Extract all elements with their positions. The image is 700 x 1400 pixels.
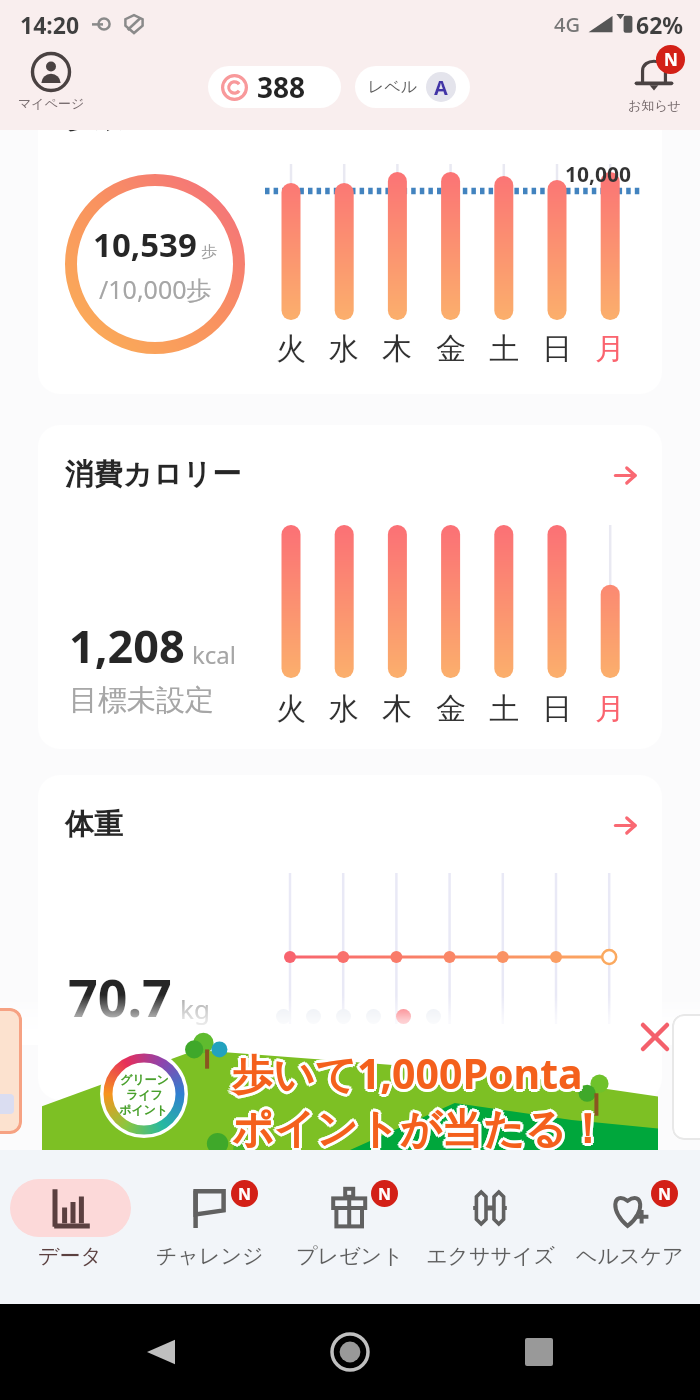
staticText: ヘルスケア bbox=[576, 1243, 684, 1269]
staticText: 水 bbox=[329, 330, 359, 368]
staticText: 歩いて1,000Ponta bbox=[232, 1042, 583, 1098]
staticText: チャレンジ bbox=[156, 1243, 264, 1269]
staticText: ポイントが当たる！ bbox=[234, 1106, 610, 1154]
staticText: ポイントが当たる！ bbox=[230, 1102, 606, 1150]
staticText: 日 bbox=[542, 690, 572, 728]
staticText: 日 bbox=[542, 330, 572, 368]
staticText: 歩いて1,000Ponta bbox=[230, 1047, 581, 1103]
staticText: 消費カロリー bbox=[65, 456, 242, 493]
staticText: ライフ bbox=[126, 1087, 163, 1102]
staticText: 歩 bbox=[201, 242, 217, 262]
button[interactable]: 歩数 bbox=[38, 78, 662, 394]
button[interactable]: 388 bbox=[208, 66, 341, 108]
button[interactable]: 消費カロリー bbox=[38, 425, 662, 749]
staticText: N bbox=[658, 1183, 672, 1205]
staticText: 歩いて1,000Ponta bbox=[232, 1048, 583, 1104]
staticText: プレゼント bbox=[296, 1243, 404, 1269]
staticText: 歩数 bbox=[66, 100, 122, 135]
staticText: ポイントが当たる！ bbox=[235, 1104, 611, 1152]
button[interactable]: データ bbox=[0, 1150, 140, 1304]
staticText: 火 bbox=[276, 690, 306, 728]
staticText: ポイントが当たる！ bbox=[229, 1104, 605, 1152]
staticText: N bbox=[238, 1183, 252, 1205]
staticText: 388 bbox=[257, 68, 306, 106]
button[interactable]: 広告を閉じる bbox=[635, 1017, 675, 1057]
button[interactable]: ホーム bbox=[322, 1324, 378, 1380]
staticText: ポイントが当たる！ bbox=[230, 1106, 606, 1154]
staticText: kcal bbox=[192, 638, 236, 671]
staticText: kg bbox=[180, 991, 210, 1026]
button[interactable]: エクササイズ bbox=[420, 1150, 560, 1304]
staticText: N bbox=[378, 1183, 392, 1205]
staticText: 土 bbox=[489, 690, 519, 728]
staticText: N bbox=[664, 48, 678, 71]
staticText: 月 bbox=[595, 690, 625, 728]
button[interactable]: レベル bbox=[355, 66, 470, 108]
staticText: 木 bbox=[382, 330, 412, 368]
staticText: 木 bbox=[382, 690, 412, 728]
staticText: 1,208 bbox=[69, 615, 185, 676]
button[interactable]: N bbox=[560, 1150, 700, 1304]
button[interactable]: 詳細を見る bbox=[607, 807, 643, 843]
staticText: データ bbox=[38, 1243, 102, 1269]
staticText: 金 bbox=[436, 690, 466, 728]
staticText: 金 bbox=[436, 330, 466, 368]
button[interactable]: 体重 bbox=[38, 775, 662, 1100]
button[interactable]: お知らせ bbox=[609, 51, 699, 113]
staticText: 体重 bbox=[65, 806, 123, 843]
staticText: /10,000歩 bbox=[99, 272, 212, 306]
button[interactable]: 詳細を見る bbox=[607, 457, 643, 493]
staticText: 4G bbox=[554, 11, 580, 38]
staticText: 62% bbox=[636, 9, 684, 40]
staticText: A bbox=[434, 74, 448, 101]
staticText: 火 bbox=[276, 330, 306, 368]
staticText: 10,539 bbox=[93, 222, 197, 267]
staticText: 14:20 bbox=[20, 9, 80, 40]
staticText: ポイントが当たる！ bbox=[232, 1107, 608, 1155]
button[interactable]: グリーン bbox=[42, 1043, 658, 1150]
staticText: エクササイズ bbox=[426, 1243, 555, 1269]
staticText: 水 bbox=[329, 690, 359, 728]
staticText: ポイントが当たる！ bbox=[234, 1102, 610, 1150]
button[interactable]: N bbox=[280, 1150, 420, 1304]
staticText: 目標未設定 bbox=[69, 682, 214, 719]
button[interactable]: 履歴 bbox=[511, 1324, 567, 1380]
staticText: 10,000 bbox=[565, 160, 632, 189]
button[interactable]: マイページ bbox=[6, 51, 96, 111]
staticText: ポイントが当たる！ bbox=[232, 1101, 608, 1149]
button[interactable]: N bbox=[140, 1150, 280, 1304]
staticText: 歩いて1,000Ponta bbox=[234, 1047, 585, 1103]
staticText: マイページ bbox=[18, 95, 85, 111]
staticText: グリーン bbox=[120, 1072, 169, 1087]
staticText: ポイントが当たる！ bbox=[232, 1104, 608, 1152]
staticText: 歩いて1,000Ponta bbox=[232, 1045, 583, 1101]
staticText: レベル bbox=[368, 77, 418, 97]
staticText: ポイント bbox=[119, 1102, 169, 1117]
button[interactable]: 戻る bbox=[133, 1324, 189, 1380]
staticText: 歩いて1,000Ponta bbox=[235, 1045, 586, 1101]
staticText: 70.7 bbox=[68, 961, 172, 1032]
staticText: 月 bbox=[595, 330, 625, 368]
staticText: 歩いて1,000Ponta bbox=[230, 1043, 581, 1099]
staticText: 歩いて1,000Ponta bbox=[234, 1043, 585, 1099]
staticText: お知らせ bbox=[628, 97, 681, 113]
staticText: 土 bbox=[489, 330, 519, 368]
staticText: 歩いて1,000Ponta bbox=[229, 1045, 580, 1101]
